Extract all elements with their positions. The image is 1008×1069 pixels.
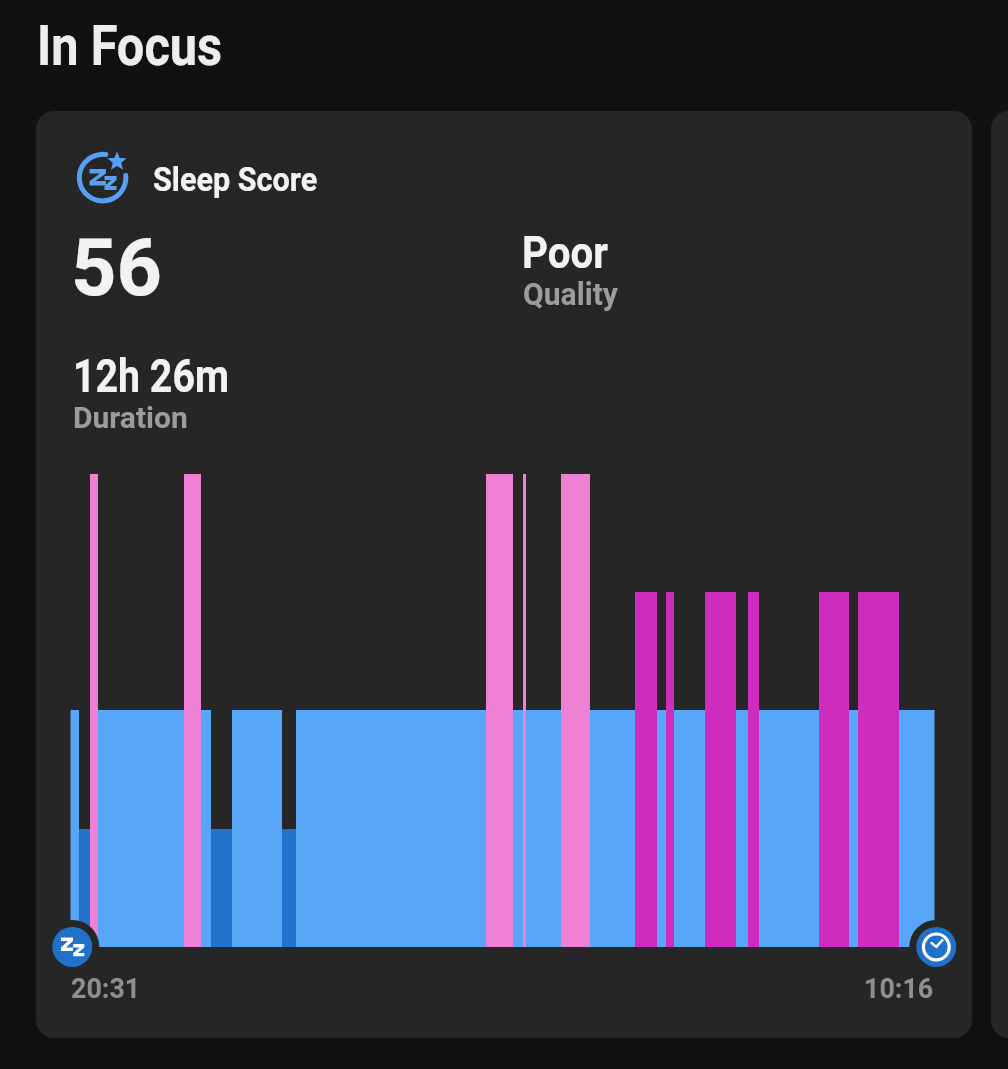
staticText: 10:16 <box>864 972 934 1005</box>
staticText: 12h 26m <box>73 349 229 403</box>
staticText: Poor <box>522 227 608 279</box>
staticText: In Focus <box>37 13 222 79</box>
staticText: Duration <box>73 400 188 435</box>
staticText: Sleep Score <box>153 160 318 199</box>
button[interactable] <box>36 111 972 1038</box>
staticText: 20:31 <box>71 972 141 1005</box>
staticText: Quality <box>523 276 618 312</box>
staticText: 56 <box>71 221 162 315</box>
